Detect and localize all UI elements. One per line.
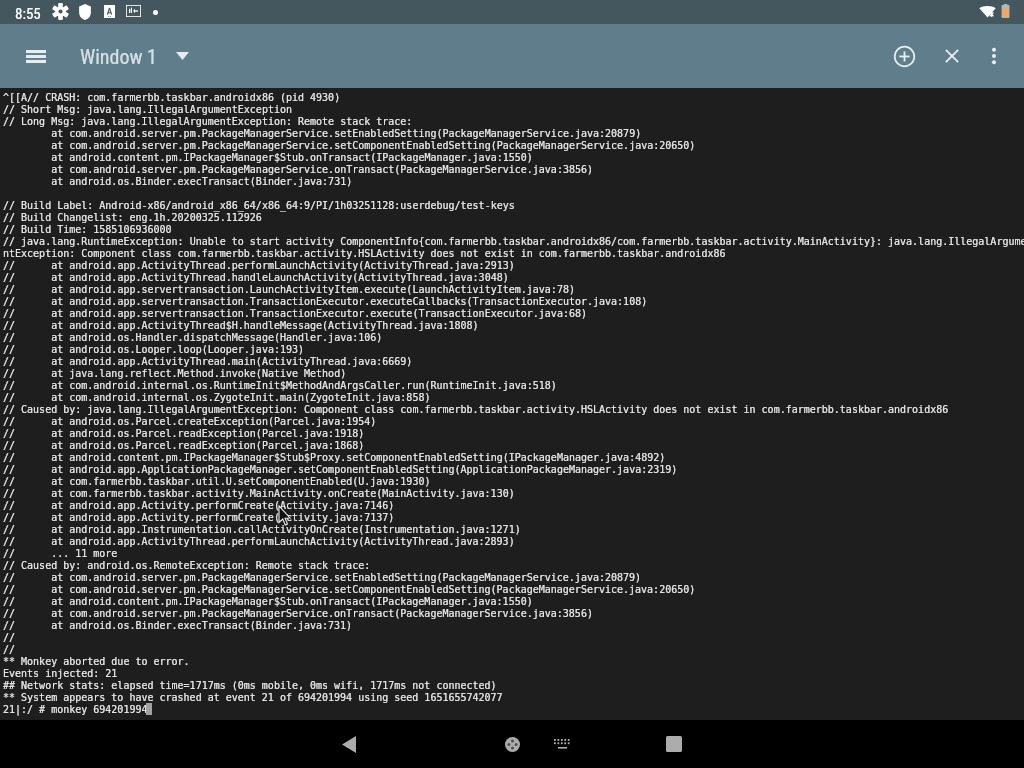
button[interactable]: More options xyxy=(970,32,1018,80)
staticText: ^[[A// CRASH: com.farmerbb.taskbar.andro… xyxy=(3,91,1024,715)
button[interactable]: Window 1 xyxy=(72,32,197,80)
button[interactable]: Home xyxy=(488,720,536,768)
button[interactable]: Close window xyxy=(928,32,976,80)
staticText: Window 1 xyxy=(80,45,157,68)
staticText: 8:55 xyxy=(15,5,41,23)
button[interactable]: Add window xyxy=(880,32,928,80)
button[interactable]: Navigation menu xyxy=(12,32,60,80)
button[interactable]: Back xyxy=(325,720,373,768)
button[interactable]: Recent apps xyxy=(650,720,698,768)
button[interactable]: Show keyboard xyxy=(538,720,586,768)
